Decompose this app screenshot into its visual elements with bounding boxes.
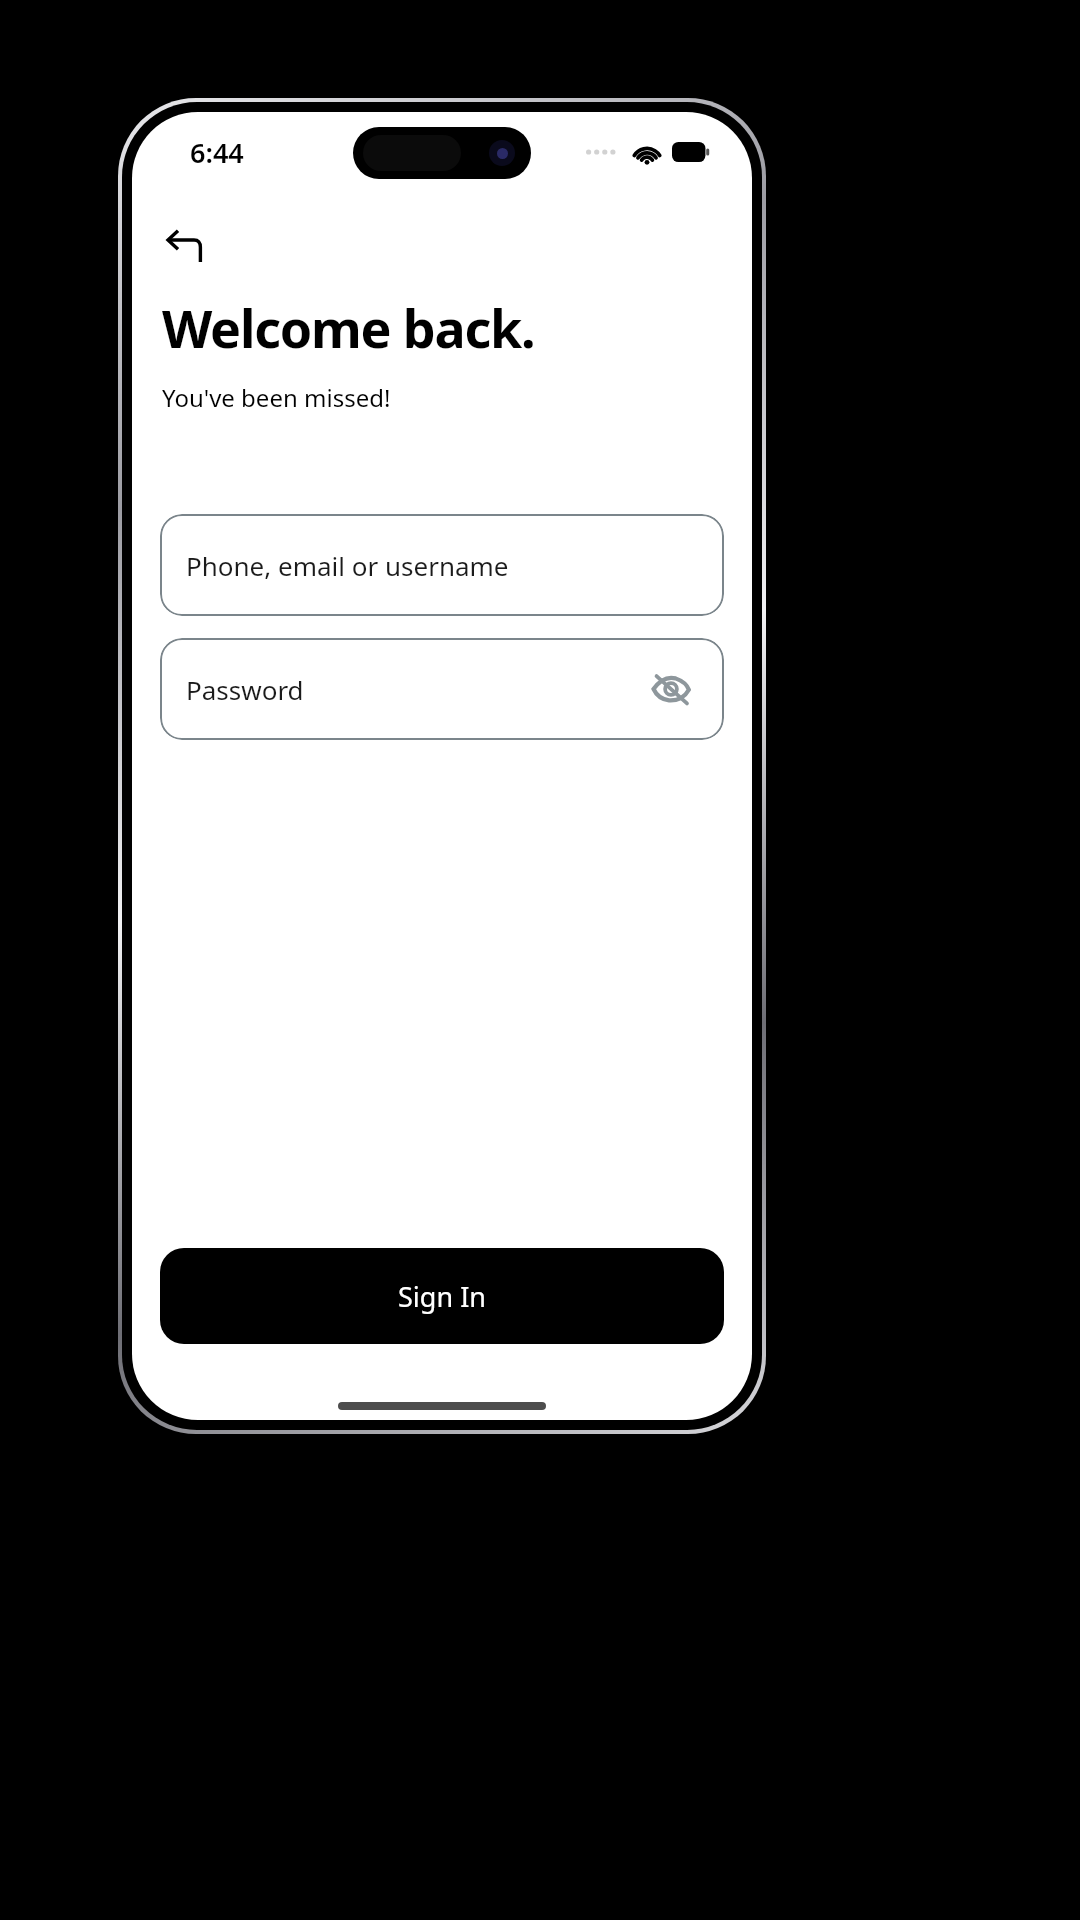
button[interactable]: Password	[160, 638, 724, 740]
staticText: 6:44	[190, 134, 244, 171]
staticText: Password	[186, 672, 304, 707]
button[interactable]: Show password	[648, 666, 694, 712]
button[interactable]: Sign In	[160, 1248, 724, 1344]
staticText: Phone, email or username	[186, 548, 509, 583]
button[interactable]: Back	[154, 216, 218, 280]
staticText: Sign In	[398, 1278, 486, 1315]
staticText: Welcome back.	[162, 292, 535, 363]
staticText: You've been missed!	[162, 381, 391, 414]
button[interactable]: Phone, email or username	[160, 514, 724, 616]
